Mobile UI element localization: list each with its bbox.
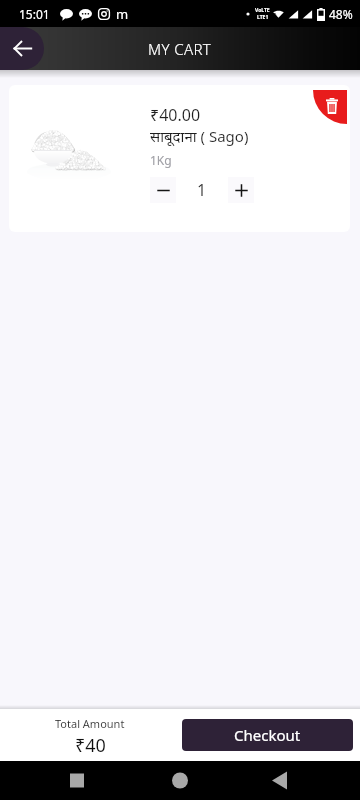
- staticText: साबूदाना ( Sago): [150, 126, 249, 146]
- button[interactable]: Checkout: [182, 719, 353, 751]
- button[interactable]: ₹40.00: [9, 85, 350, 232]
- staticText: ₹40.00: [150, 104, 201, 126]
- staticText: VoLTE: [255, 7, 270, 14]
- staticText: LTE1: [257, 14, 269, 21]
- button[interactable]: Delete item: [313, 90, 347, 124]
- staticText: m: [116, 5, 129, 23]
- button[interactable]: Increase quantity: [228, 177, 254, 203]
- staticText: ₹40: [75, 733, 106, 758]
- staticText: MY CART: [148, 39, 212, 59]
- staticText: 1: [197, 179, 207, 201]
- staticText: Checkout: [234, 725, 301, 745]
- button[interactable]: Back: [0, 27, 44, 70]
- staticText: 1Kg: [150, 152, 172, 168]
- staticText: Total Amount: [55, 716, 125, 731]
- button[interactable]: Decrease quantity: [150, 177, 176, 203]
- staticText: 48%: [329, 6, 353, 22]
- staticText: 15:01: [19, 6, 50, 22]
